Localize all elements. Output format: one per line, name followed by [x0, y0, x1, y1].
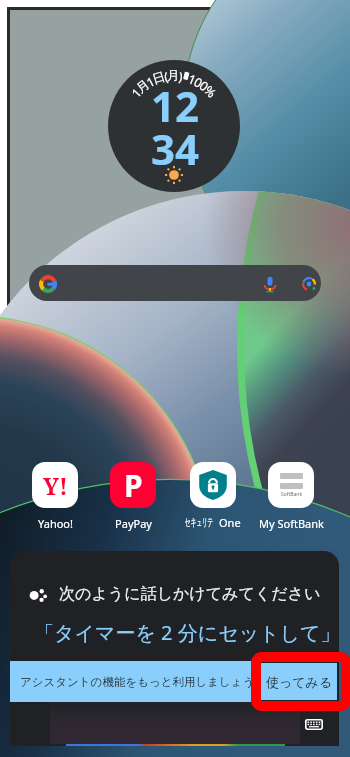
button[interactable]: P	[93, 462, 173, 531]
staticText: 「タイマーを 2 分にセットして」	[34, 619, 339, 646]
staticText: 使ってみる	[266, 674, 333, 690]
button[interactable]: SoftBank	[251, 462, 331, 531]
staticText: Y!	[43, 470, 68, 501]
staticText: 次のように話しかけてみてください	[59, 584, 321, 604]
staticText: P	[124, 465, 143, 506]
staticText: アシスタントの機能をもっと利用しましょう	[20, 675, 252, 689]
staticText: PayPay	[115, 516, 152, 531]
button[interactable]	[173, 462, 253, 529]
button[interactable]: 使ってみる	[261, 663, 337, 700]
staticText: 34	[151, 120, 200, 177]
staticText: Yahoo!	[38, 516, 73, 531]
button[interactable]: Y!	[15, 462, 95, 531]
button[interactable]: アシスタントの機能をもっと利用しましょう	[10, 661, 252, 702]
staticText: My SoftBank	[259, 516, 324, 531]
button[interactable]: Keyboard	[305, 718, 323, 731]
staticText: SoftBank	[281, 491, 303, 498]
staticText: 12	[151, 77, 200, 134]
button[interactable]: 12	[108, 60, 240, 192]
button[interactable]	[29, 265, 321, 301]
